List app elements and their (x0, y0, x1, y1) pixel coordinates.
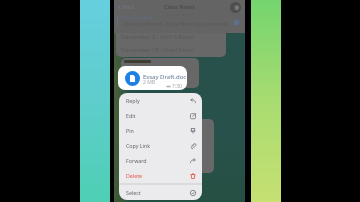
staticText: Pin (126, 127, 134, 134)
staticText: Reply (126, 97, 140, 104)
staticText: Forward (126, 157, 147, 164)
staticText: December 18 - Final Exam (121, 46, 194, 54)
staticText: Pinned message (121, 15, 154, 21)
staticText: Essay Draft.doc (143, 73, 187, 81)
staticText: December 3 - Unit 5 Exam (121, 33, 195, 41)
button[interactable]: Delete (119, 168, 202, 183)
button[interactable]: Back (116, 3, 136, 12)
button[interactable]: Edit (119, 108, 202, 123)
button[interactable]: Chat avatar (230, 2, 241, 13)
button[interactable]: Essay Draft.doc (118, 66, 187, 90)
button[interactable]: Select (119, 185, 202, 200)
staticText: Edit (126, 112, 136, 119)
button[interactable]: Copy Link (119, 138, 202, 153)
staticText: Class Notes (164, 3, 195, 11)
staticText: Delete (126, 172, 143, 179)
staticText: Copy Link (126, 142, 151, 149)
staticText: 7:30 (172, 83, 182, 90)
button[interactable]: Pin (119, 123, 202, 138)
button[interactable]: Reply (119, 93, 202, 108)
button[interactable]: Forward (119, 153, 202, 168)
staticText: Select (126, 189, 141, 196)
staticText: 2 MB (143, 79, 155, 86)
staticText: Back (123, 4, 135, 11)
